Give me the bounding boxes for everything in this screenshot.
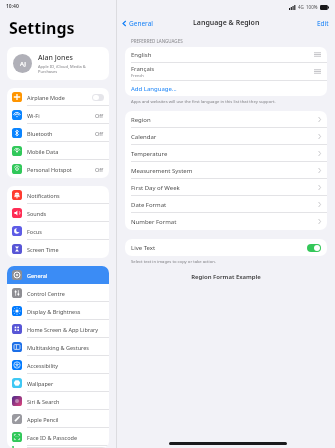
staticText: Home Screen & App Library [27,326,104,333]
staticText: First Day of Week [131,184,318,192]
staticText: Airplane Mode [27,94,92,101]
button[interactable]: Region [125,111,327,128]
staticText: Measurement System [131,167,318,175]
staticText: Live Text [131,244,307,252]
button[interactable]: Face ID & Passcode [7,428,109,446]
staticText: Control Centre [27,290,104,297]
button[interactable]: Focus [7,222,109,240]
button[interactable]: AJ [7,47,109,80]
staticText: Settings [9,17,75,39]
staticText: Wi-Fi [27,112,95,119]
button[interactable]: Wi-Fi [7,106,109,124]
staticText: Apps and websites will use the first lan… [131,99,276,105]
button[interactable]: Live Text [125,239,327,256]
button[interactable]: Calendar [125,128,327,145]
other: Reorder [314,52,321,57]
button[interactable]: Display & Brightness [7,302,109,320]
button[interactable]: Control Centre [7,284,109,302]
staticText: Bluetooth [27,130,95,137]
staticText: Off [95,130,104,137]
staticText: English [131,51,152,59]
other: Reorder [314,69,321,74]
staticText: Alan Jones [38,53,73,63]
staticText: Region Format Example [117,273,335,281]
staticText: Battery [27,446,104,448]
staticText: Siri & Search [27,398,104,405]
staticText: Notifications [27,192,104,199]
staticText: Off [95,166,104,173]
staticText: Language & Region [193,18,260,28]
staticText: Sounds [27,210,104,217]
staticText: Wallpaper [27,380,104,387]
staticText: Face ID & Passcode [27,434,104,441]
staticText: PREFERRED LANGUAGES [131,38,183,44]
staticText: Mobile Data [27,148,104,155]
button[interactable]: Home Screen & App Library [7,320,109,338]
staticText: Apple ID, iCloud, Media & Purchases [38,64,103,74]
staticText: Personal Hotspot [27,166,95,173]
button[interactable]: Français [125,63,327,80]
button[interactable]: Airplane Mode [7,88,109,106]
button[interactable]: Personal Hotspot [7,160,109,178]
staticText: 4G [298,4,304,10]
button[interactable]: Multitasking & Gestures [7,338,109,356]
staticText: Accessibility [27,362,104,369]
staticText: Calendar [131,133,318,141]
staticText: AJ [20,60,26,68]
staticText: Add Language... [131,85,177,93]
staticText: Off [95,112,104,119]
button[interactable]: Number Format [125,213,327,230]
button[interactable]: English [125,47,327,62]
button[interactable] [92,94,104,101]
staticText: General [129,19,153,28]
staticText: Apple Pencil [27,416,104,423]
staticText: Français [131,65,155,73]
staticText: 100% [306,4,318,10]
button[interactable]: General [7,266,109,284]
staticText: Select text in images to copy or take ac… [131,259,216,265]
button[interactable]: Notifications [7,186,109,204]
staticText: Multitasking & Gestures [27,344,104,351]
staticText: Region [131,116,318,124]
staticText: Number Format [131,218,318,226]
button[interactable]: Date Format [125,196,327,213]
button[interactable]: Mobile Data [7,142,109,160]
button[interactable]: Siri & Search [7,392,109,410]
staticText: Display & Brightness [27,308,104,315]
button[interactable]: Wallpaper [7,374,109,392]
button[interactable]: Screen Time [7,240,109,258]
staticText: Screen Time [27,246,104,253]
button[interactable]: Bluetooth [7,124,109,142]
staticText: Date Format [131,201,318,209]
button[interactable]: General [117,16,157,31]
button[interactable]: Sounds [7,204,109,222]
staticText: Focus [27,228,104,235]
button[interactable]: Apple Pencil [7,410,109,428]
button[interactable]: First Day of Week [125,179,327,196]
staticText: 10:40 [6,3,19,10]
staticText: Temperature [131,150,318,158]
button[interactable]: Measurement System [125,162,327,179]
staticText: French [131,73,144,78]
button[interactable]: Edit [311,15,335,32]
button[interactable]: Battery [7,446,109,448]
button[interactable]: Add Language... [125,81,327,96]
button[interactable]: Temperature [125,145,327,162]
staticText: General [27,272,104,279]
button[interactable]: Accessibility [7,356,109,374]
